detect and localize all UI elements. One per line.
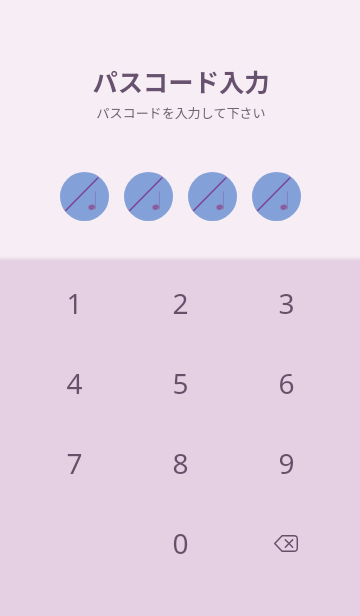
button[interactable]: 1 (37, 269, 111, 337)
staticText: 7 (66, 444, 83, 482)
staticText: 6 (278, 364, 295, 402)
staticText: 0 (172, 524, 189, 562)
staticText: 4 (66, 364, 83, 402)
button[interactable]: 7 (37, 429, 111, 497)
button[interactable]: 0 (143, 509, 217, 577)
staticText: パスコード入力 (92, 63, 270, 100)
staticText: 9 (278, 444, 295, 482)
staticText: 1 (66, 284, 83, 322)
staticText: 5 (172, 364, 189, 402)
button[interactable]: 9 (249, 429, 323, 497)
button[interactable]: Backspace (249, 509, 323, 577)
button[interactable]: 6 (249, 349, 323, 417)
button[interactable]: 8 (143, 429, 217, 497)
staticText: 8 (172, 444, 189, 482)
button[interactable]: 5 (143, 349, 217, 417)
button[interactable]: 3 (249, 269, 323, 337)
staticText: 3 (278, 284, 295, 322)
staticText: 2 (172, 284, 189, 322)
button[interactable]: 4 (37, 349, 111, 417)
staticText: パスコードを入力して下さい (96, 103, 266, 122)
button[interactable]: 2 (143, 269, 217, 337)
